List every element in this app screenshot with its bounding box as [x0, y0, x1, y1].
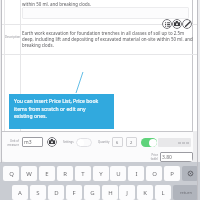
staticText: L: [161, 189, 165, 197]
button[interactable]: return: [173, 185, 198, 200]
button[interactable]: J: [119, 185, 135, 200]
button[interactable]: You can insert Price List, Price book it…: [9, 94, 114, 129]
staticText: J: [126, 189, 128, 197]
button[interactable]: Backspace: [182, 166, 198, 181]
button[interactable]: I: [128, 166, 144, 181]
staticText: Q: [9, 170, 14, 178]
button[interactable]: W: [21, 166, 37, 181]
button[interactable]: Toggle on: [141, 138, 157, 147]
staticText: E: [45, 170, 49, 178]
button[interactable]: G: [84, 185, 100, 200]
staticText: within 50 ml. and breaking clods.: [22, 1, 92, 7]
staticText: Y: [99, 170, 103, 178]
staticText: You can insert Price List, Price book it…: [14, 98, 99, 119]
staticText: H: [108, 189, 113, 197]
button[interactable]: A: [12, 185, 28, 200]
staticText: S: [36, 189, 40, 197]
button[interactable]: S: [30, 185, 46, 200]
button[interactable]: H: [102, 185, 118, 200]
staticText: Earth work excavation for foundation tre…: [22, 30, 195, 48]
staticText: 3.80: [162, 154, 172, 161]
staticText: P: [170, 170, 174, 178]
staticText: return: [180, 190, 192, 195]
button[interactable]: [22, 7, 189, 19]
button[interactable]: 6: [112, 137, 123, 147]
button[interactable]: Toggle off: [76, 138, 92, 147]
button[interactable]: P: [164, 166, 180, 181]
button[interactable]: K: [137, 185, 153, 200]
staticText: F: [72, 189, 76, 197]
staticText: K: [143, 189, 147, 197]
staticText: xx xx xx: [178, 141, 190, 145]
button[interactable]: T: [75, 166, 91, 181]
staticText: U: [116, 170, 121, 178]
staticText: 2: [130, 140, 133, 145]
staticText: Description: [5, 35, 21, 39]
staticText: R: [63, 170, 67, 178]
staticText: A: [18, 189, 22, 197]
button[interactable]: m3: [22, 137, 43, 147]
button[interactable]: Q: [3, 166, 19, 181]
button[interactable]: R: [57, 166, 73, 181]
staticText: W: [26, 170, 32, 178]
button[interactable]: L: [155, 185, 171, 200]
button[interactable]: Y: [93, 166, 109, 181]
button[interactable]: Price list: [162, 19, 172, 29]
button[interactable]: D: [48, 185, 64, 200]
staticText: Unit of measure: [5, 139, 19, 147]
button[interactable]: F: [66, 185, 82, 200]
staticText: G: [90, 189, 95, 197]
staticText: Quantity: [98, 140, 110, 144]
staticText: 6: [116, 140, 119, 145]
button[interactable]: O: [146, 166, 162, 181]
button[interactable]: E: [39, 166, 55, 181]
staticText: D: [54, 189, 59, 197]
staticText: Settings: [63, 140, 74, 144]
staticText: T: [81, 170, 85, 178]
button[interactable]: xx xx xx: [158, 138, 191, 147]
staticText: I: [135, 170, 138, 178]
button[interactable]: U: [110, 166, 126, 181]
button[interactable]: 2: [126, 137, 137, 147]
staticText: Price (with): [147, 153, 158, 161]
button[interactable]: Options: [47, 137, 57, 147]
button[interactable]: Camera: [172, 19, 182, 29]
staticText: m3: [24, 139, 32, 146]
button[interactable]: 3.80: [160, 152, 193, 162]
staticText: O: [152, 170, 157, 178]
button[interactable]: Edit: [182, 19, 192, 29]
